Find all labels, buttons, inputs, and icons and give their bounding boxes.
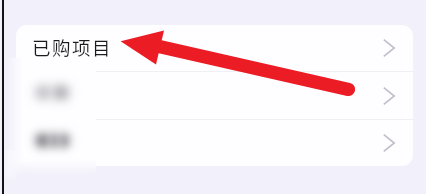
button[interactable]: Open [16, 120, 413, 166]
button[interactable]: 已购项目 [16, 25, 413, 71]
staticText: 已购项目 [32, 34, 113, 61]
button[interactable]: Open [375, 79, 403, 113]
button[interactable]: Open [375, 126, 403, 160]
button[interactable]: Open [375, 31, 403, 65]
button[interactable]: Open [16, 72, 413, 119]
